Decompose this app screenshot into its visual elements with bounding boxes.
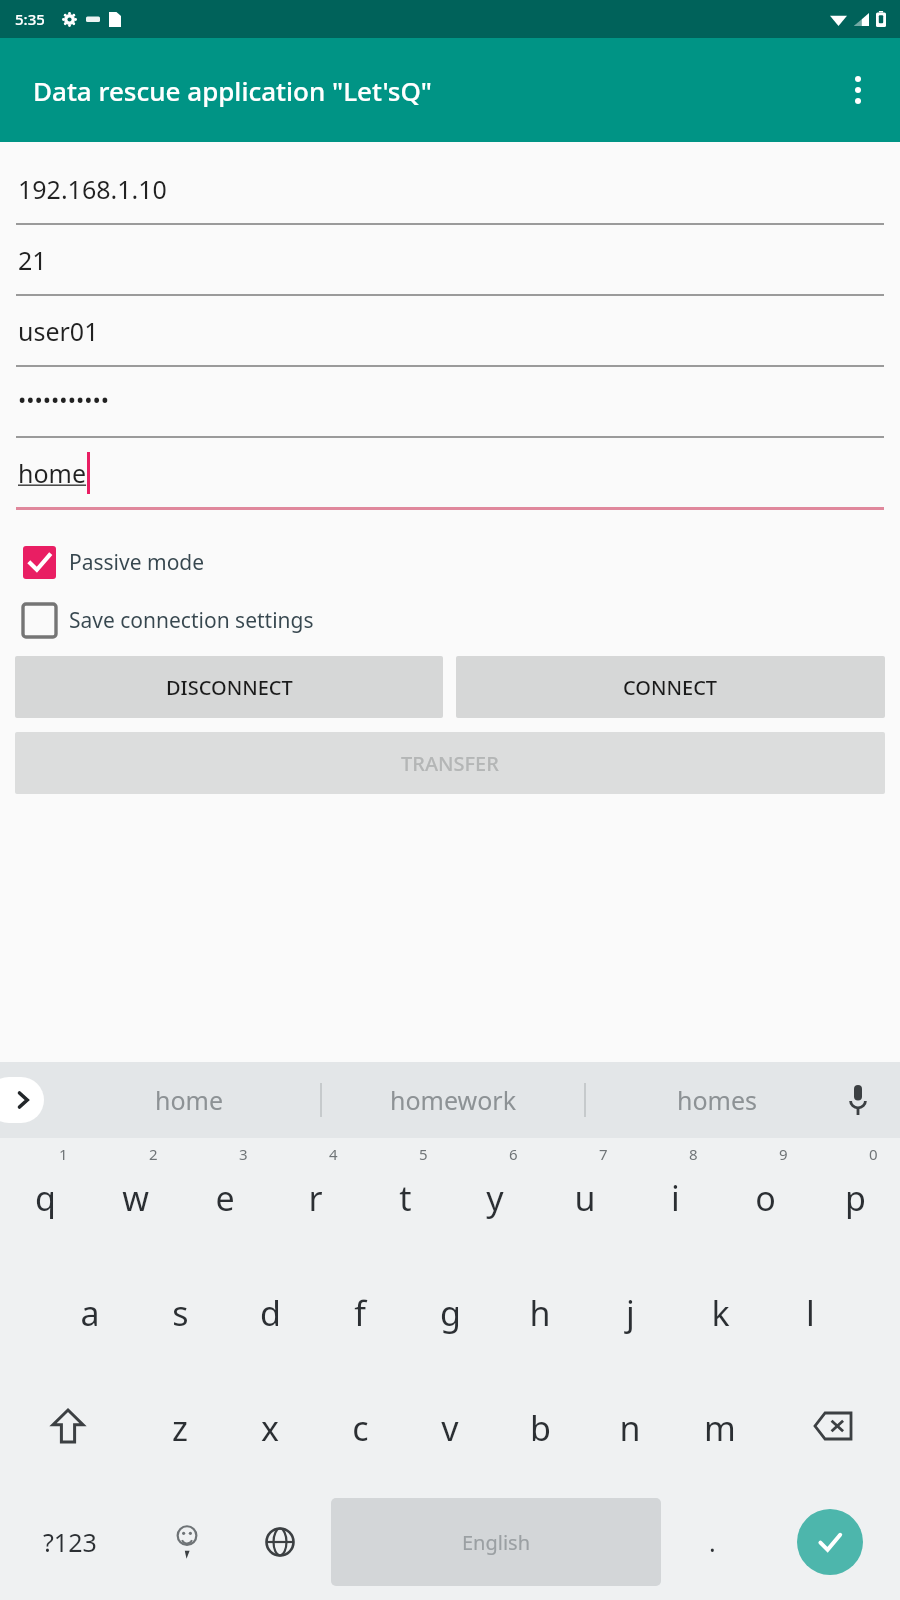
staticText: 5 [419, 1144, 428, 1164]
staticText: h [529, 1290, 551, 1336]
button[interactable]: j [585, 1253, 675, 1368]
button[interactable]: ?123 [0, 1484, 140, 1600]
button[interactable]: . [665, 1484, 759, 1600]
staticText: 6 [509, 1144, 518, 1164]
button[interactable]: v [405, 1368, 495, 1484]
staticText: user01 [18, 314, 99, 348]
button[interactable]: f [315, 1253, 405, 1368]
button[interactable]: m [675, 1368, 765, 1484]
staticText: t [399, 1175, 412, 1221]
staticText: DISCONNECT [166, 674, 293, 701]
staticText: m [704, 1405, 736, 1451]
button[interactable]: o [720, 1138, 810, 1253]
staticText: x [261, 1405, 279, 1451]
button[interactable]: d [225, 1253, 315, 1368]
staticText: c [352, 1405, 369, 1451]
staticText: q [35, 1175, 56, 1221]
staticText: homes [677, 1083, 758, 1117]
staticText: j [626, 1290, 635, 1336]
staticText: v [441, 1405, 459, 1451]
staticText: p [845, 1175, 866, 1221]
staticText: CONNECT [623, 674, 718, 701]
button[interactable]: ••••••••••• [16, 367, 884, 438]
staticText: o [755, 1175, 776, 1221]
button[interactable]: More options [830, 62, 886, 118]
button[interactable]: 192.168.1.10 [16, 154, 884, 225]
staticText: 9 [779, 1144, 788, 1164]
button[interactable]: CONNECT [456, 656, 885, 718]
button[interactable]: r [270, 1138, 360, 1253]
staticText: g [440, 1290, 461, 1336]
staticText: TRANSFER [401, 750, 499, 777]
button[interactable]: n [585, 1368, 675, 1484]
staticText: ••••••••••• [18, 384, 109, 414]
button[interactable]: Emoji and comma [140, 1484, 233, 1600]
button[interactable]: s [135, 1253, 225, 1368]
staticText: 21 [18, 243, 47, 277]
button[interactable]: Passive mode [21, 538, 879, 586]
staticText: home [155, 1083, 224, 1117]
button[interactable]: h [495, 1253, 585, 1368]
button[interactable]: z [135, 1368, 225, 1484]
staticText: u [574, 1175, 596, 1221]
staticText: f [354, 1290, 366, 1336]
staticText: 2 [149, 1144, 158, 1164]
button[interactable]: Done [797, 1509, 863, 1575]
staticText: Passive mode [69, 548, 205, 577]
button[interactable]: home [16, 438, 884, 510]
staticText: i [671, 1175, 680, 1221]
button[interactable]: b [495, 1368, 585, 1484]
staticText: r [308, 1175, 323, 1221]
staticText: 192.168.1.10 [18, 172, 167, 206]
button[interactable]: y [450, 1138, 540, 1253]
button[interactable]: p [810, 1138, 900, 1253]
button[interactable]: More suggestions [0, 1077, 44, 1123]
button[interactable]: w [90, 1138, 180, 1253]
staticText: Data rescue application "Let'sQ" [33, 73, 432, 108]
button[interactable]: c [315, 1368, 405, 1484]
staticText: s [172, 1290, 189, 1336]
button[interactable]: u [540, 1138, 630, 1253]
staticText: d [260, 1290, 281, 1336]
button[interactable]: g [405, 1253, 495, 1368]
button[interactable]: x [225, 1368, 315, 1484]
staticText: k [711, 1290, 730, 1336]
staticText: y [486, 1175, 504, 1221]
button[interactable]: homework [322, 1062, 584, 1138]
button[interactable]: Shift [0, 1368, 135, 1484]
button[interactable]: a [45, 1253, 135, 1368]
button[interactable]: i [630, 1138, 720, 1253]
staticText: 8 [689, 1144, 698, 1164]
staticText: l [806, 1290, 815, 1336]
button[interactable]: q [0, 1138, 90, 1253]
button[interactable]: Change language [233, 1484, 327, 1600]
staticText: 1 [59, 1144, 68, 1164]
button[interactable]: Voice input [834, 1076, 882, 1124]
button[interactable]: user01 [16, 296, 884, 367]
button[interactable]: Save connection settings [21, 596, 879, 644]
staticText: 0 [869, 1144, 878, 1164]
button[interactable]: TRANSFER [15, 732, 885, 794]
staticText: home [18, 456, 87, 490]
staticText: 5:35 [15, 9, 45, 29]
staticText: 3 [239, 1144, 248, 1164]
staticText: n [619, 1405, 641, 1451]
button[interactable]: 21 [16, 225, 884, 296]
button[interactable]: l [765, 1253, 855, 1368]
staticText: English [462, 1529, 531, 1556]
button[interactable]: English [331, 1498, 661, 1586]
staticText: e [215, 1175, 235, 1221]
button[interactable]: Backspace [765, 1368, 900, 1484]
staticText: ?123 [43, 1525, 97, 1559]
staticText: 4 [329, 1144, 338, 1164]
button[interactable]: homes [586, 1062, 848, 1138]
button[interactable]: DISCONNECT [15, 656, 443, 718]
button[interactable]: e [180, 1138, 270, 1253]
button[interactable]: k [675, 1253, 765, 1368]
staticText: . [709, 1525, 716, 1559]
button[interactable]: home [58, 1062, 320, 1138]
staticText: a [80, 1290, 100, 1336]
staticText: 7 [599, 1144, 608, 1164]
button[interactable]: t [360, 1138, 450, 1253]
staticText: Save connection settings [69, 606, 314, 635]
